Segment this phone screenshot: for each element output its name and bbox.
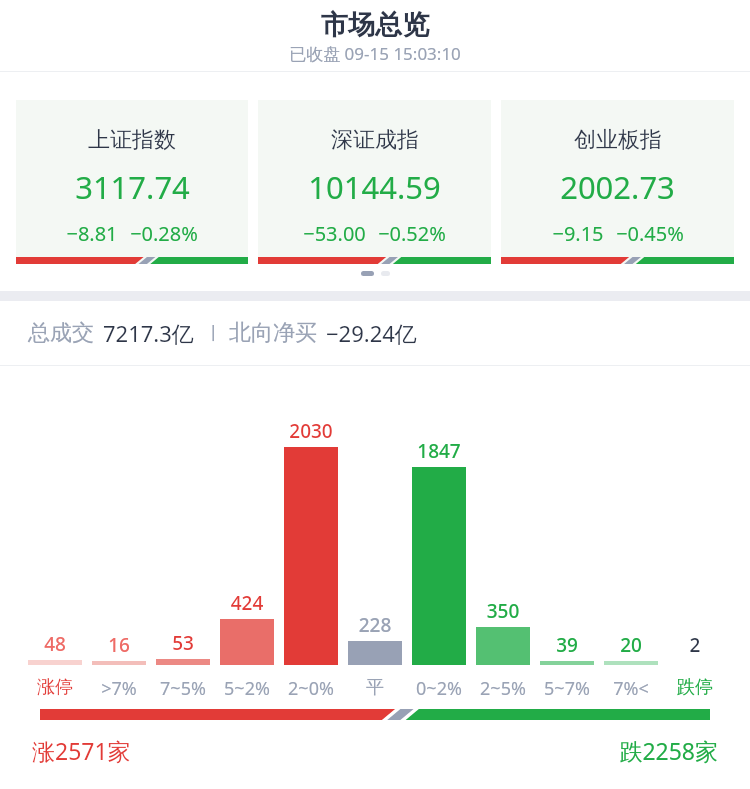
- staticText: 1847: [399, 438, 479, 464]
- button[interactable]: 深证成指: [258, 100, 491, 264]
- staticText: 20: [591, 632, 671, 658]
- staticText: 北向净买: [229, 319, 317, 347]
- staticText: 2002.73: [560, 166, 675, 208]
- staticText: 48: [15, 631, 95, 657]
- staticText: 跌停: [655, 676, 735, 699]
- staticText: −0.28%: [130, 220, 198, 247]
- staticText: 2~0%: [271, 676, 351, 701]
- staticText: −0.52%: [378, 220, 446, 247]
- staticText: >7%: [79, 676, 159, 701]
- staticText: −0.45%: [616, 220, 684, 247]
- staticText: 已收盘 09-15 15:03:10: [0, 42, 750, 65]
- staticText: 3117.74: [75, 166, 190, 208]
- staticText: −53.00: [303, 220, 366, 247]
- staticText: 跌2258家: [498, 735, 718, 766]
- staticText: 2: [655, 632, 735, 658]
- staticText: 市场总览: [0, 8, 750, 42]
- staticText: 10144.59: [308, 166, 441, 208]
- staticText: 深证成指: [331, 126, 419, 154]
- staticText: 丨: [205, 323, 222, 344]
- staticText: −8.81: [66, 220, 118, 247]
- staticText: 7%<: [591, 676, 671, 701]
- staticText: −29.24亿: [326, 318, 417, 348]
- staticText: 上证指数: [88, 126, 176, 154]
- staticText: 424: [207, 590, 287, 616]
- staticText: 涨2571家: [32, 735, 252, 766]
- staticText: 350: [463, 598, 543, 624]
- staticText: 5~2%: [207, 676, 287, 701]
- staticText: 0~2%: [399, 676, 479, 701]
- button[interactable]: 创业板指: [501, 100, 734, 264]
- staticText: 创业板指: [574, 126, 662, 154]
- staticText: 16: [79, 632, 159, 658]
- staticText: 7217.3亿: [103, 318, 194, 348]
- staticText: 7~5%: [143, 676, 223, 701]
- staticText: 平: [335, 676, 415, 699]
- staticText: 53: [143, 630, 223, 656]
- staticText: −9.15: [552, 220, 604, 247]
- staticText: 228: [335, 612, 415, 638]
- staticText: 总成交: [28, 319, 94, 347]
- staticText: 39: [527, 632, 607, 658]
- staticText: 5~7%: [527, 676, 607, 701]
- staticText: 2030: [271, 418, 351, 444]
- button[interactable]: 上证指数: [16, 100, 248, 264]
- staticText: 2~5%: [463, 676, 543, 701]
- staticText: 涨停: [15, 676, 95, 699]
